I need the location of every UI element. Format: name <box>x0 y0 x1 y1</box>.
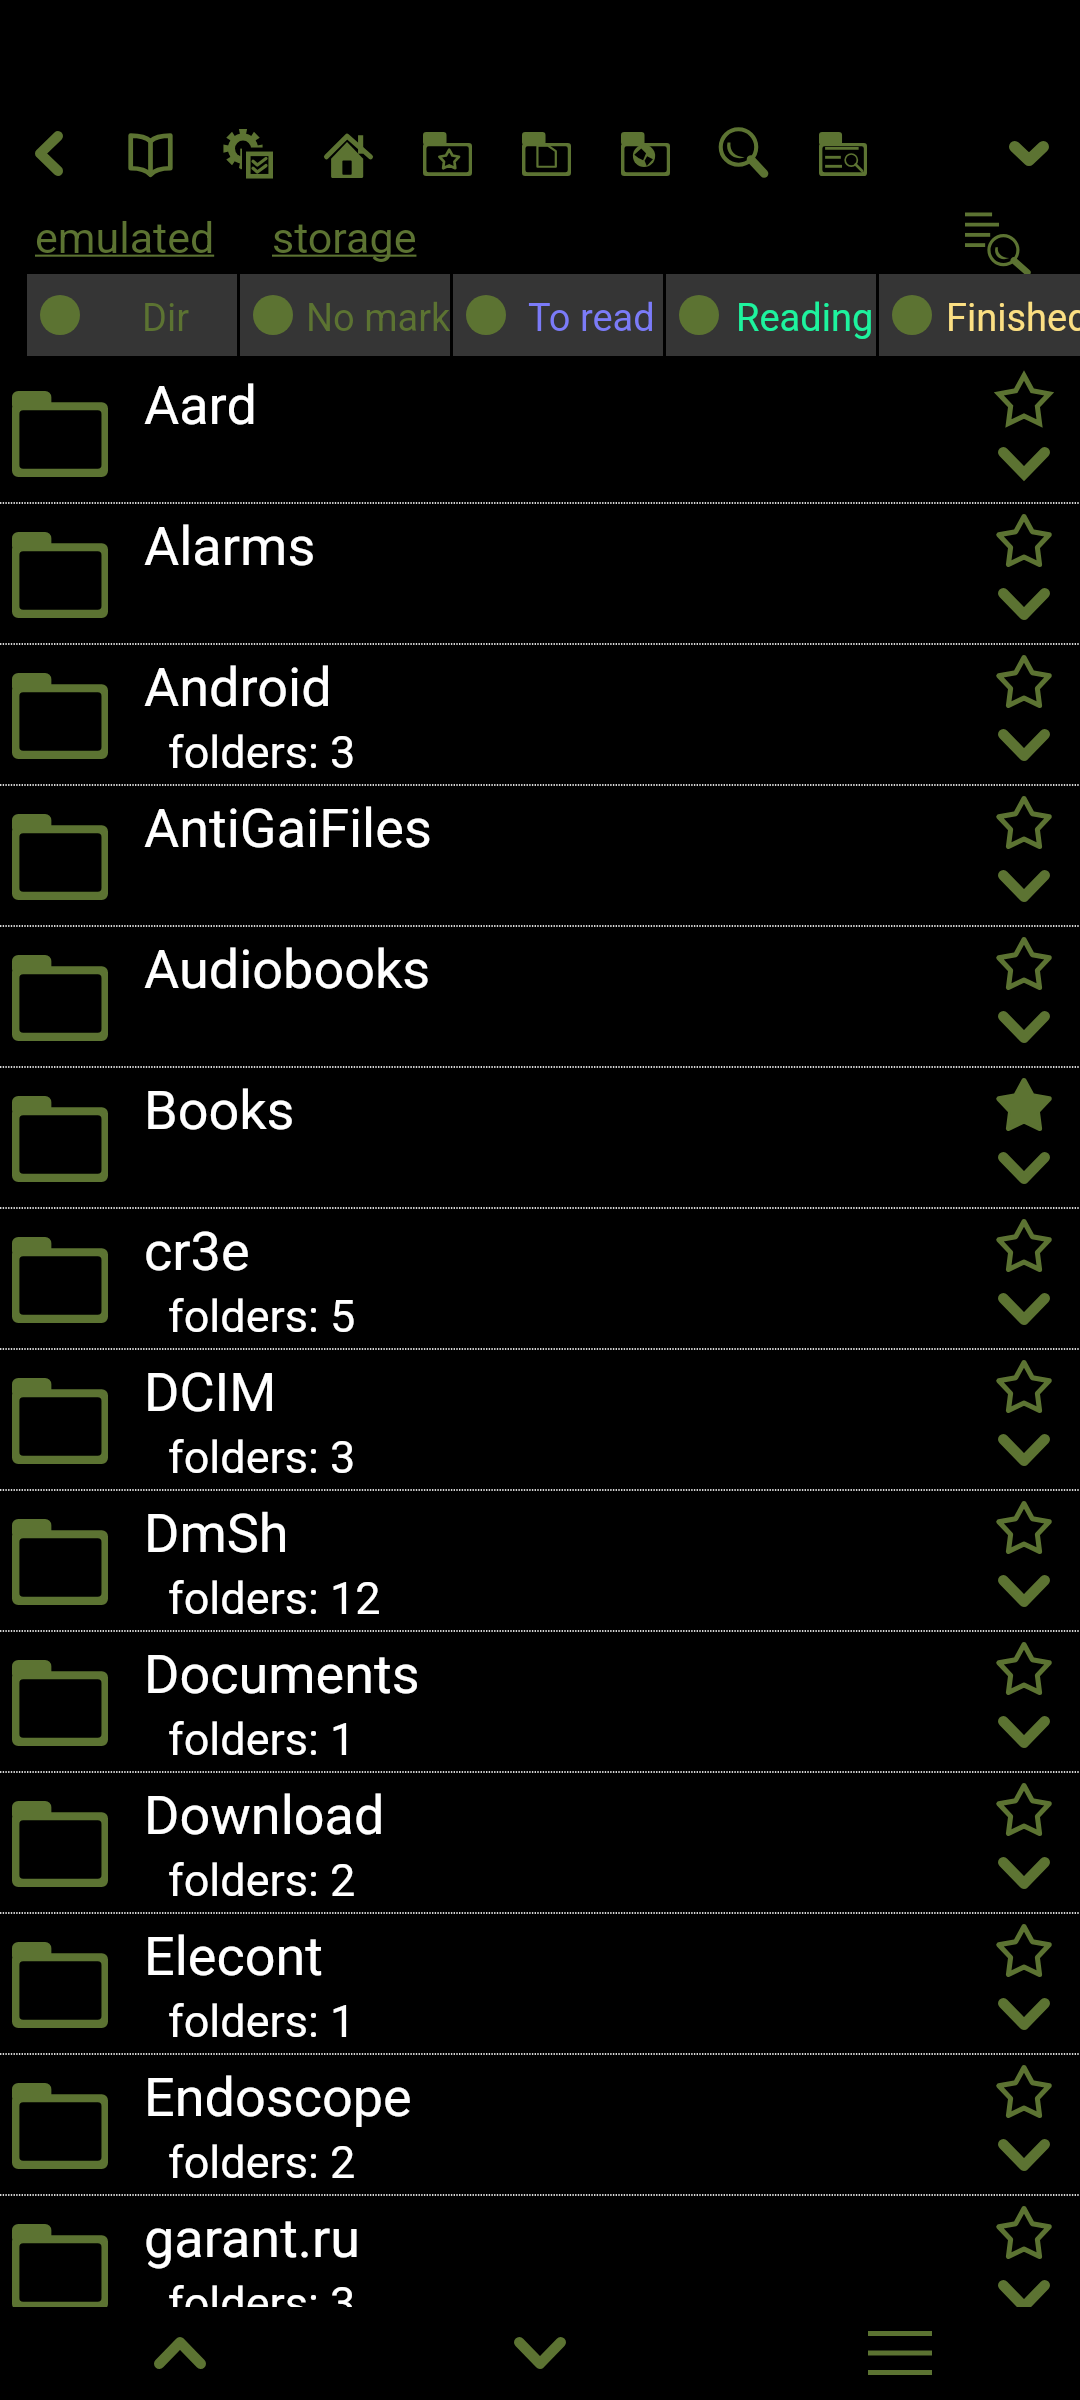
button[interactable]: DmSh <box>0 1491 1080 1632</box>
button[interactable]: Item menu <box>978 1560 1070 1622</box>
button[interactable]: Toggle favourite <box>978 789 1070 855</box>
staticText: DCIM <box>144 1361 277 1424</box>
button[interactable]: cr3e <box>0 1209 1080 1350</box>
button[interactable]: Item menu <box>978 1701 1070 1763</box>
staticText: folders: 1 <box>168 1995 356 2048</box>
button[interactable]: Toggle favourite <box>978 1494 1070 1560</box>
button[interactable]: Toggle favourite <box>978 2058 1070 2124</box>
staticText: folders: 3 <box>168 726 356 779</box>
button[interactable]: Item menu <box>978 1278 1070 1340</box>
staticText: DmSh <box>144 1502 289 1565</box>
button[interactable]: Item menu <box>978 2265 1070 2307</box>
staticText: Alarms <box>144 515 316 578</box>
button[interactable]: Toggle favourite <box>978 1917 1070 1983</box>
staticText: Reading <box>736 296 874 341</box>
button[interactable]: Elecont <box>0 1914 1080 2055</box>
button[interactable]: Download <box>0 1773 1080 1914</box>
staticText: folders: 3 <box>168 2277 356 2307</box>
staticText: storage <box>272 213 417 263</box>
button[interactable]: Toggle favourite <box>978 1071 1070 1137</box>
staticText: folders: 5 <box>168 1290 356 1343</box>
button[interactable]: Toggle favourite <box>978 366 1070 432</box>
button[interactable]: Documents <box>0 1632 1080 1773</box>
button[interactable]: Home <box>299 110 397 200</box>
button[interactable]: Toggle favourite <box>978 648 1070 714</box>
button[interactable]: Open book <box>101 109 199 199</box>
staticText: folders: 1 <box>168 1713 356 1766</box>
staticText: AntiGaiFiles <box>144 797 432 860</box>
button[interactable]: Finished <box>879 274 1080 356</box>
staticText: Audiobooks <box>144 938 431 1001</box>
button[interactable]: Item menu <box>978 996 1070 1058</box>
button[interactable]: Alarms <box>0 504 1080 645</box>
button[interactable]: DCIM <box>0 1350 1080 1491</box>
staticText: Endoscope <box>144 2066 412 2129</box>
button[interactable]: Item menu <box>978 714 1070 776</box>
staticText: Android <box>144 656 332 719</box>
button[interactable]: Item menu <box>978 432 1070 494</box>
button[interactable]: Item menu <box>978 2124 1070 2186</box>
button[interactable]: To read <box>453 274 663 356</box>
button[interactable]: storage <box>272 207 417 269</box>
staticText: emulated <box>35 213 215 263</box>
button[interactable]: Dir <box>27 274 237 356</box>
button[interactable]: Recent files <box>497 109 595 199</box>
button[interactable]: Back <box>0 108 98 198</box>
button[interactable]: Item menu <box>978 1983 1070 2045</box>
button[interactable]: Endoscope <box>0 2055 1080 2196</box>
staticText: Books <box>144 1079 295 1142</box>
button[interactable]: More options <box>980 108 1078 198</box>
staticText: Download <box>144 1784 385 1847</box>
button[interactable]: Online catalogs <box>596 109 694 199</box>
button[interactable]: Aard <box>0 363 1080 504</box>
staticText: cr3e <box>144 1220 250 1283</box>
button[interactable]: Toggle favourite <box>978 1212 1070 1278</box>
button[interactable]: Toggle favourite <box>978 1776 1070 1842</box>
button[interactable]: Toggle favourite <box>978 930 1070 996</box>
button[interactable]: garant.ru <box>0 2196 1080 2307</box>
button[interactable]: Item menu <box>978 1419 1070 1481</box>
button[interactable]: Toggle favourite <box>978 1635 1070 1701</box>
staticText: Dir <box>142 296 190 341</box>
staticText: folders: 2 <box>168 2136 356 2189</box>
staticText: folders: 3 <box>168 1431 356 1484</box>
staticText: folders: 12 <box>168 1572 381 1625</box>
button[interactable]: Item menu <box>978 573 1070 635</box>
button[interactable]: Item menu <box>978 1842 1070 1904</box>
button[interactable]: Item menu <box>978 1137 1070 1199</box>
staticText: garant.ru <box>144 2207 361 2270</box>
staticText: Documents <box>144 1643 420 1706</box>
button[interactable]: Favourite folders <box>398 109 496 199</box>
staticText: Elecont <box>144 1925 324 1988</box>
button[interactable]: Books <box>0 1068 1080 1209</box>
button[interactable]: Reading <box>666 274 876 356</box>
staticText: To read <box>528 296 655 341</box>
button[interactable]: Toggle favourite <box>978 507 1070 573</box>
button[interactable]: Settings <box>199 108 297 198</box>
button[interactable]: Browse library <box>794 109 892 199</box>
button[interactable]: Item menu <box>978 855 1070 917</box>
button[interactable]: Search <box>695 108 793 198</box>
button[interactable]: No mark <box>240 274 450 356</box>
button[interactable]: Audiobooks <box>0 927 1080 1068</box>
staticText: Finished <box>946 296 1080 341</box>
button[interactable]: Toggle favourite <box>978 1353 1070 1419</box>
button[interactable]: emulated <box>35 207 215 269</box>
button[interactable]: Page down <box>480 2300 600 2400</box>
button[interactable]: Sort order <box>940 190 1070 288</box>
button[interactable]: Page up <box>120 2300 240 2400</box>
staticText: No mark <box>306 296 451 341</box>
button[interactable]: Menu <box>840 2300 960 2400</box>
staticText: Aard <box>144 374 257 437</box>
button[interactable]: Toggle favourite <box>978 2199 1070 2265</box>
button[interactable]: AntiGaiFiles <box>0 786 1080 927</box>
staticText: folders: 2 <box>168 1854 356 1907</box>
button[interactable]: Android <box>0 645 1080 786</box>
